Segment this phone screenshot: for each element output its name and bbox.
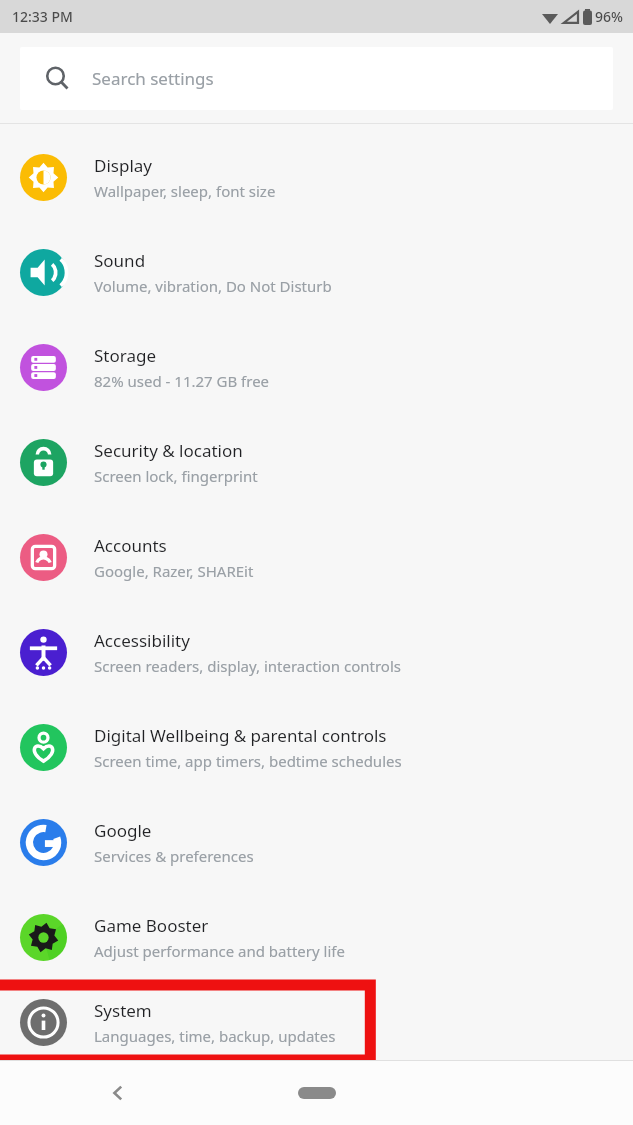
button[interactable]: Security & location [0,415,633,510]
staticText: Accounts [94,534,167,557]
staticText: Digital Wellbeing & parental controls [94,724,387,747]
staticText: Search settings [92,67,214,90]
staticText: Google, Razer, SHAREit [94,561,254,581]
staticText: Screen lock, fingerprint [94,466,258,486]
staticText: 96% [595,7,623,26]
button[interactable]: Home [289,1073,345,1113]
staticText: Game Booster [94,914,209,937]
button[interactable]: Display [0,130,633,225]
staticText: Sound [94,249,146,272]
button[interactable]: Google [0,795,633,890]
button[interactable]: System [0,985,633,1060]
button[interactable]: Storage [0,320,633,415]
staticText: Accessibility [94,629,190,652]
staticText: Screen readers, display, interaction con… [94,656,401,676]
staticText: Google [94,819,152,842]
staticText: System [94,999,152,1022]
button[interactable]: Sound [0,225,633,320]
staticText: Volume, vibration, Do Not Disturb [94,276,332,296]
staticText: Services & preferences [94,846,254,866]
staticText: Screen time, app timers, bedtime schedul… [94,751,402,771]
staticText: Storage [94,344,157,367]
staticText: Wallpaper, sleep, font size [94,181,276,201]
button[interactable]: Accessibility [0,605,633,700]
button[interactable]: Digital Wellbeing & parental controls [0,700,633,795]
button[interactable]: Game Booster [0,890,633,985]
staticText: Security & location [94,439,243,462]
button[interactable]: Back [96,1071,140,1115]
staticText: 12:33 PM [12,7,73,26]
staticText: Adjust performance and battery life [94,941,345,961]
staticText: Languages, time, backup, updates [94,1026,336,1046]
staticText: Display [94,154,152,177]
button[interactable]: Accounts [0,510,633,605]
button[interactable]: Search settings [20,47,613,110]
staticText: 82% used - 11.27 GB free [94,371,270,391]
